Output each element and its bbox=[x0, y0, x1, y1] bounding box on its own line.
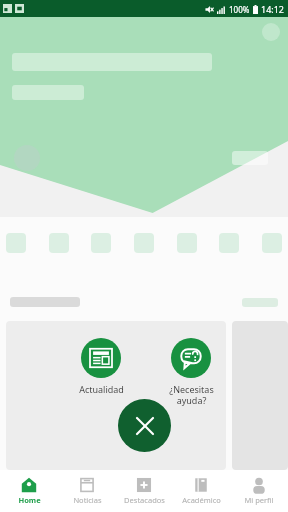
button[interactable]: Académico bbox=[173, 470, 229, 512]
staticText: 100% bbox=[229, 4, 250, 15]
button[interactable]: ¿Necesitas ayuda? bbox=[160, 338, 222, 406]
button[interactable] bbox=[177, 233, 197, 253]
button[interactable]: Home bbox=[1, 470, 57, 512]
button[interactable]: Destacados bbox=[116, 470, 172, 512]
staticText: Académico bbox=[182, 495, 221, 505]
button[interactable]: Actualidad bbox=[70, 338, 132, 395]
staticText: Noticias bbox=[73, 495, 102, 505]
staticText: Mi perfil bbox=[244, 495, 274, 505]
button[interactable] bbox=[219, 233, 239, 253]
staticText: Destacados bbox=[124, 495, 165, 505]
staticText: 14:12 bbox=[261, 3, 285, 15]
button[interactable] bbox=[6, 233, 26, 253]
button[interactable] bbox=[262, 233, 282, 253]
staticText: Home bbox=[18, 495, 41, 505]
staticText: Actualidad bbox=[79, 383, 124, 395]
button[interactable]: Close menu bbox=[118, 399, 171, 452]
button[interactable] bbox=[134, 233, 154, 253]
button[interactable]: Noticias bbox=[59, 470, 115, 512]
staticText: ¿Necesitas ayuda? bbox=[169, 383, 214, 406]
button[interactable] bbox=[49, 233, 69, 253]
button[interactable] bbox=[91, 233, 111, 253]
button[interactable]: Mi perfil bbox=[231, 470, 287, 512]
button[interactable] bbox=[6, 321, 226, 470]
